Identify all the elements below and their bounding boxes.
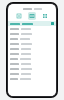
button[interactable]: Bookmark (8, 21, 56, 26)
button[interactable] (8, 76, 56, 81)
button[interactable]: Bookmarks (41, 12, 49, 20)
button[interactable] (8, 36, 56, 41)
button[interactable] (8, 26, 56, 31)
button[interactable] (8, 51, 56, 56)
button[interactable] (8, 56, 56, 61)
button[interactable] (8, 31, 56, 36)
button[interactable]: Contents (15, 12, 23, 20)
button[interactable] (8, 66, 56, 71)
button[interactable] (8, 46, 56, 51)
button[interactable]: Chapters (28, 12, 36, 20)
button[interactable] (8, 71, 56, 76)
button[interactable] (8, 61, 56, 66)
other: Bookmark (51, 22, 54, 25)
button[interactable] (8, 41, 56, 46)
